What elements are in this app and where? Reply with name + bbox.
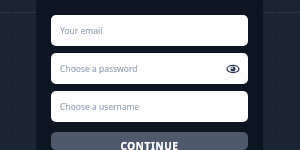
button[interactable]: Show password xyxy=(226,62,240,76)
staticText: CONTINUE xyxy=(120,139,179,150)
staticText: Choose a password xyxy=(60,63,138,75)
staticText: Your email xyxy=(60,25,103,37)
button[interactable]: Your email xyxy=(51,15,248,46)
button[interactable]: Choose a password xyxy=(51,53,248,84)
staticText: Choose a username xyxy=(60,101,140,113)
button[interactable]: CONTINUE xyxy=(51,132,248,150)
button[interactable]: Choose a username xyxy=(51,91,248,122)
